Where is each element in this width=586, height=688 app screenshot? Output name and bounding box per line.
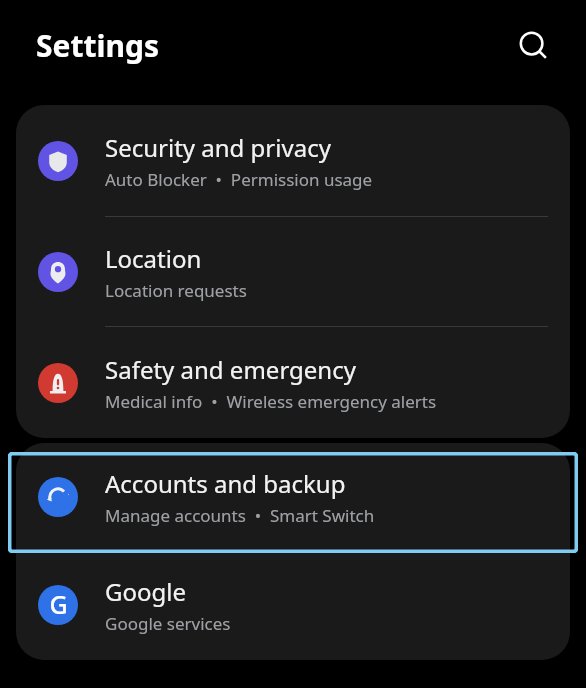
staticText: Safety and emergency — [105, 353, 356, 386]
button[interactable]: Accounts and backup — [16, 443, 570, 550]
button[interactable]: Safety and emergency — [16, 327, 570, 438]
staticText: Google services — [105, 612, 231, 635]
staticText: Location requests — [105, 279, 247, 302]
staticText: Google — [105, 575, 186, 608]
staticText: Manage accounts • Smart Switch — [105, 504, 375, 527]
staticText: Accounts and backup — [105, 467, 346, 500]
staticText: Auto Blocker • Permission usage — [105, 168, 373, 191]
button[interactable] — [8, 452, 578, 553]
staticText: Security and privacy — [105, 131, 331, 164]
button[interactable]: Location — [16, 217, 570, 326]
button[interactable]: Search — [506, 18, 562, 74]
staticText: Location — [105, 242, 202, 275]
button[interactable]: Security and privacy — [16, 105, 570, 216]
staticText: G — [49, 587, 68, 621]
staticText: Settings — [36, 25, 159, 66]
button[interactable]: G — [16, 551, 570, 659]
staticText: Medical info • Wireless emergency alerts — [105, 390, 437, 413]
